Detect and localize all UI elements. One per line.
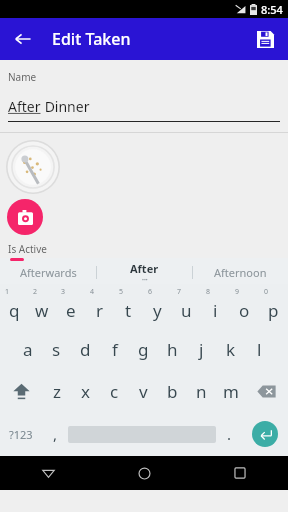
button[interactable]: Save [248, 22, 282, 56]
staticText: 4 [90, 287, 95, 297]
staticText: 2 [33, 287, 38, 297]
button[interactable]: Afternoon [193, 261, 288, 283]
button[interactable]: c [100, 370, 129, 412]
staticText: Afterwards [20, 265, 77, 280]
button[interactable]: 9 [230, 284, 259, 328]
button[interactable]: 5 [114, 284, 143, 328]
staticText: u [181, 299, 192, 322]
button[interactable]: Back [0, 456, 96, 490]
button[interactable]: ?123 [0, 412, 42, 456]
button[interactable]: , [42, 412, 68, 456]
staticText: g [138, 338, 149, 361]
button[interactable]: n [187, 370, 216, 412]
button[interactable]: Home [96, 456, 192, 490]
staticText: 3 [61, 287, 66, 297]
staticText: 5 [119, 287, 124, 297]
staticText: l [257, 338, 262, 361]
button[interactable]: 7 [172, 284, 201, 328]
button[interactable]: a [13, 328, 42, 370]
staticText: r [96, 299, 104, 322]
button[interactable]: f [100, 328, 129, 370]
staticText: Edit Taken [52, 28, 131, 50]
button[interactable]: Shift [0, 370, 42, 412]
button[interactable]: g [129, 328, 158, 370]
button[interactable]: j [187, 328, 216, 370]
staticText: Dinner [41, 97, 90, 116]
staticText: w [35, 299, 49, 322]
button[interactable]: l [245, 328, 274, 370]
button[interactable]: d [71, 328, 100, 370]
staticText: ?123 [9, 427, 33, 442]
staticText: m [223, 380, 239, 403]
button[interactable]: v [129, 370, 158, 412]
button[interactable]: 4 [85, 284, 114, 328]
button[interactable]: 0 [259, 284, 288, 328]
staticText: 1 [5, 287, 10, 297]
button[interactable]: x [71, 370, 100, 412]
button[interactable]: z [42, 370, 71, 412]
staticText: , [53, 424, 58, 444]
staticText: j [199, 338, 204, 361]
button[interactable]: 6 [143, 284, 172, 328]
staticText: k [226, 338, 236, 361]
button[interactable]: Enter [242, 412, 288, 456]
button[interactable]: Back [6, 22, 40, 56]
button[interactable]: m [216, 370, 245, 412]
button[interactable]: 1 [0, 284, 28, 328]
staticText: n [196, 380, 207, 403]
button[interactable]: b [158, 370, 187, 412]
staticText: o [239, 299, 250, 322]
button[interactable]: Backspace [245, 370, 288, 412]
button[interactable]: . [216, 412, 242, 456]
staticText: z [53, 380, 61, 403]
button[interactable]: Take photo [7, 199, 43, 235]
staticText: After [130, 261, 159, 276]
staticText: Afternoon [214, 265, 267, 280]
staticText: 9 [235, 287, 240, 297]
staticText: d [80, 338, 91, 361]
staticText: 0 [264, 287, 269, 297]
staticText: 6 [148, 287, 153, 297]
staticText: Name [8, 70, 37, 84]
staticText: x [81, 380, 90, 403]
staticText: Is Active [8, 242, 47, 256]
button[interactable]: Afterwards [0, 261, 96, 283]
staticText: s [52, 338, 61, 361]
staticText: c [110, 380, 119, 403]
staticText: y [153, 299, 162, 322]
staticText: v [139, 380, 148, 403]
staticText: t [125, 299, 132, 322]
staticText: p [268, 299, 279, 322]
staticText: 7 [177, 287, 182, 297]
staticText: h [167, 338, 178, 361]
staticText: q [9, 299, 20, 322]
button[interactable]: After [97, 261, 192, 283]
staticText: After [8, 97, 41, 116]
staticText: f [112, 338, 118, 361]
staticText: 8:54 [261, 2, 283, 17]
button[interactable]: 8 [201, 284, 230, 328]
button[interactable]: h [158, 328, 187, 370]
button[interactable]: 2 [28, 284, 56, 328]
button[interactable]: s [42, 328, 71, 370]
staticText: a [23, 338, 33, 361]
staticText: ••• [142, 277, 148, 283]
staticText: 8 [206, 287, 211, 297]
staticText: b [167, 380, 178, 403]
button[interactable]: k [216, 328, 245, 370]
staticText: i [213, 299, 218, 322]
button[interactable]: 3 [56, 284, 85, 328]
button[interactable]: Space [68, 412, 216, 456]
staticText: . [227, 424, 232, 444]
staticText: e [66, 299, 76, 322]
button[interactable]: Recent apps [192, 456, 288, 490]
